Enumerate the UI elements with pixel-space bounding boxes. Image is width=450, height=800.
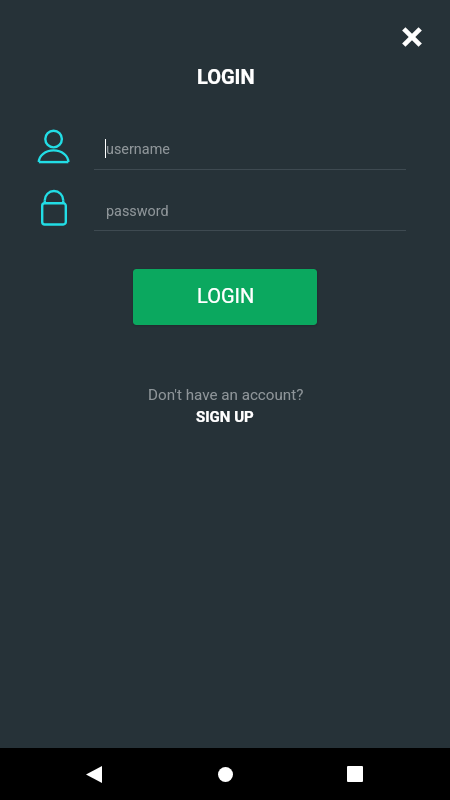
- staticText: username: [106, 141, 170, 158]
- button[interactable]: username: [94, 130, 406, 170]
- staticText: LOGIN: [197, 65, 255, 88]
- staticText: password: [106, 203, 169, 220]
- button[interactable]: SIGN UP: [190, 405, 260, 427]
- button[interactable]: Close: [392, 17, 432, 57]
- button[interactable]: Recents: [331, 750, 379, 798]
- button[interactable]: password: [94, 192, 406, 231]
- button[interactable]: Back: [70, 750, 118, 798]
- button[interactable]: Home: [201, 750, 249, 798]
- staticText: LOGIN: [197, 284, 255, 307]
- staticText: SIGN UP: [196, 408, 254, 426]
- button[interactable]: LOGIN: [133, 269, 317, 325]
- staticText: Don't have an account?: [148, 386, 304, 404]
